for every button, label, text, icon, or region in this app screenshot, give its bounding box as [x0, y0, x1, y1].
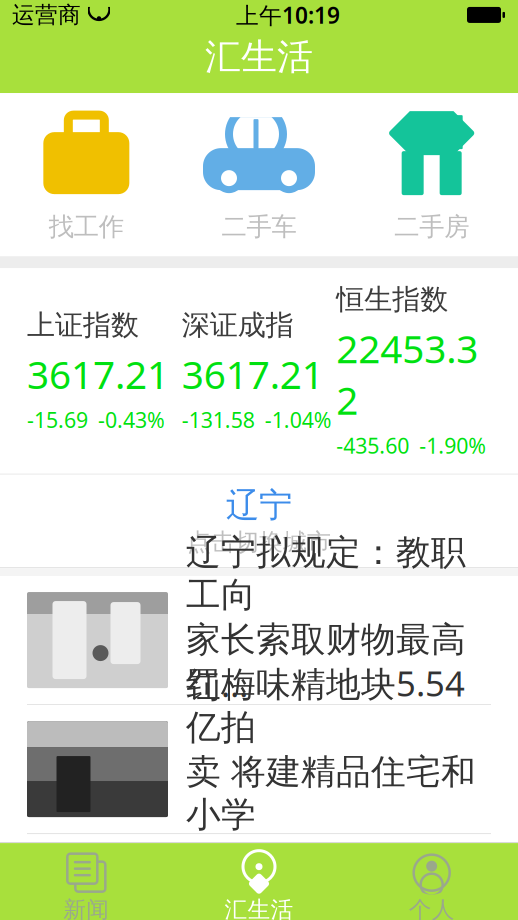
staticText: 0评论: [362, 848, 421, 878]
staticText: -1.04%: [265, 406, 332, 434]
staticText: 汇生活: [224, 896, 293, 920]
staticText: -15.69: [27, 406, 88, 434]
staticText: 22453.32: [336, 323, 478, 425]
staticText: 新闻: [63, 896, 109, 920]
staticText: 汇生活: [205, 35, 313, 79]
staticText: -435.60: [336, 431, 409, 460]
staticText: 卖 将建精品住宅和小学: [186, 751, 476, 836]
staticText: 辽宁: [226, 485, 292, 526]
staticText: 辽宁拟规定：教职工向: [186, 531, 466, 616]
button[interactable]: 个人: [345, 845, 518, 920]
staticText: 上证指数: [27, 308, 139, 342]
staticText: -1.90%: [419, 431, 486, 460]
button[interactable]: 辽宁: [0, 475, 518, 567]
staticText: 二手车: [221, 211, 296, 242]
button[interactable]: 上证指数: [0, 268, 518, 474]
staticText: 07:52:58: [186, 848, 276, 878]
staticText: 家长索取财物最高罚…: [186, 618, 466, 707]
staticText: 二手房: [394, 211, 469, 242]
staticText: 上午10:19: [236, 0, 340, 30]
button[interactable]: 二手车: [173, 93, 345, 256]
button[interactable]: 找工作: [0, 93, 173, 256]
button[interactable]: 汇生活: [173, 845, 345, 920]
staticText: 运营商: [12, 1, 81, 29]
button[interactable]: 二手房: [345, 93, 518, 256]
staticText: -131.58: [182, 406, 255, 434]
staticText: 点击切换城市: [187, 528, 331, 557]
staticText: 07:52:58: [186, 719, 276, 749]
staticText: 个人: [409, 896, 455, 920]
staticText: -0.43%: [98, 406, 165, 434]
staticText: 找工作: [49, 211, 124, 242]
staticText: 深证成指: [182, 308, 294, 342]
staticText: 3617.21: [27, 348, 169, 400]
button[interactable]: 红梅味精地块5.54亿拍: [0, 705, 518, 834]
button[interactable]: 辽宁拟规定：教职工向: [0, 576, 518, 705]
staticText: 红梅味精地块5.54亿拍: [186, 660, 465, 749]
button[interactable]: 新闻: [0, 845, 173, 920]
staticText: 恒生指数: [336, 282, 448, 317]
staticText: 3617.21: [182, 348, 324, 400]
